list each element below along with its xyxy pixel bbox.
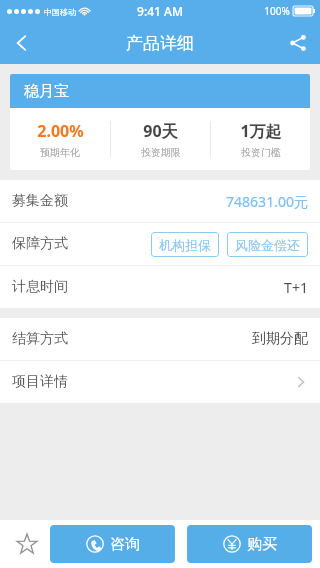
staticText: 100% (264, 4, 290, 18)
staticText: 投资期限 (141, 146, 181, 159)
staticText: 2.00% (37, 120, 84, 142)
staticText: 预期年化 (40, 146, 80, 159)
staticText: 稳月宝 (24, 82, 69, 101)
button[interactable]: 咨询 (50, 525, 175, 563)
button[interactable]: Favorite (8, 525, 46, 563)
staticText: 咨询 (110, 535, 140, 554)
staticText: 9:41 AM (137, 3, 183, 19)
button[interactable]: 风险金偿还 (227, 232, 308, 257)
staticText: 投资门檻 (241, 146, 281, 159)
button[interactable]: Back (0, 22, 44, 64)
staticText: 产品详细 (126, 33, 194, 54)
staticText: 90天 (143, 120, 178, 142)
button[interactable]: Share (276, 22, 320, 64)
staticText: 机构担保 (159, 237, 211, 253)
button[interactable]: 购买 (187, 525, 312, 563)
staticText: 到期分配 (252, 330, 308, 348)
staticText: 保障方式 (12, 235, 68, 253)
staticText: 募集金额 (12, 192, 68, 210)
staticText: 中国移动 (44, 7, 76, 17)
staticText: 风险金偿还 (235, 237, 300, 253)
staticText: 748631.00元 (226, 192, 308, 211)
button[interactable]: 项目详情 (0, 361, 320, 403)
button[interactable]: 机构担保 (151, 232, 219, 257)
staticText: 计息时间 (12, 278, 68, 296)
staticText: T+1 (284, 278, 308, 297)
staticText: 购买 (247, 535, 277, 554)
staticText: 结算方式 (12, 330, 68, 348)
staticText: 项目详情 (12, 373, 68, 391)
staticText: 1万起 (240, 120, 282, 142)
